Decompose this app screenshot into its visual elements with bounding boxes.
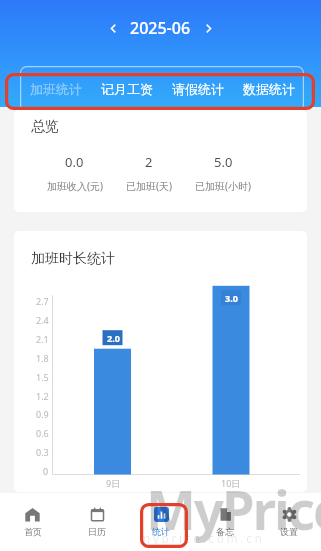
staticText: 加班统计	[30, 81, 82, 97]
staticText: 2025-06	[130, 17, 191, 39]
button[interactable]: 首页	[0, 493, 65, 551]
staticText: 数据统计	[243, 81, 295, 97]
staticText: 0.6	[36, 427, 49, 439]
staticText: 2	[145, 153, 153, 171]
staticText: 记月工资	[101, 81, 153, 97]
staticText: 已加班(小时)	[195, 179, 251, 193]
button[interactable]: 数据统计	[233, 77, 304, 101]
button[interactable]: 请假统计	[162, 77, 233, 101]
staticText: 2.7	[36, 295, 49, 307]
staticText: MyPrice	[146, 473, 321, 545]
staticText: 0.3	[36, 446, 49, 458]
staticText: myprice.com.cn	[139, 530, 265, 546]
staticText: 1.8	[36, 352, 49, 364]
staticText: 0.9	[36, 408, 49, 420]
staticText: 设置	[280, 526, 298, 537]
staticText: 0	[43, 465, 49, 477]
button[interactable]: 加班统计	[21, 77, 91, 101]
staticText: 首页	[24, 526, 42, 537]
staticText: 0.0	[65, 153, 84, 171]
staticText: 已加班(天)	[126, 179, 172, 193]
staticText: 统计	[152, 526, 170, 537]
staticText: 2.0	[107, 332, 120, 344]
button[interactable]: 记月工资	[91, 77, 162, 101]
button[interactable]: 统计	[129, 493, 193, 551]
staticText: 3.0	[225, 292, 238, 304]
staticText: 1.5	[36, 371, 49, 383]
staticText: 请假统计	[172, 81, 224, 97]
button[interactable]: 日历	[65, 493, 129, 551]
button[interactable]: Previous month	[98, 13, 128, 43]
staticText: 1.2	[36, 390, 49, 402]
button[interactable]: 设置	[257, 493, 321, 551]
staticText: 日历	[88, 526, 106, 537]
staticText: 备忘	[216, 526, 234, 537]
staticText: 10日	[221, 477, 241, 489]
staticText: 2.1	[36, 333, 49, 345]
button[interactable]: Next month	[193, 13, 223, 43]
staticText: 5.0	[214, 153, 233, 171]
staticText: 加班时长统计	[31, 250, 115, 268]
staticText: 2.4	[36, 314, 49, 326]
staticText: 9日	[106, 477, 121, 489]
staticText: 加班收入(元)	[47, 179, 103, 193]
button[interactable]: 备忘	[193, 493, 257, 551]
staticText: 总览	[31, 118, 59, 136]
